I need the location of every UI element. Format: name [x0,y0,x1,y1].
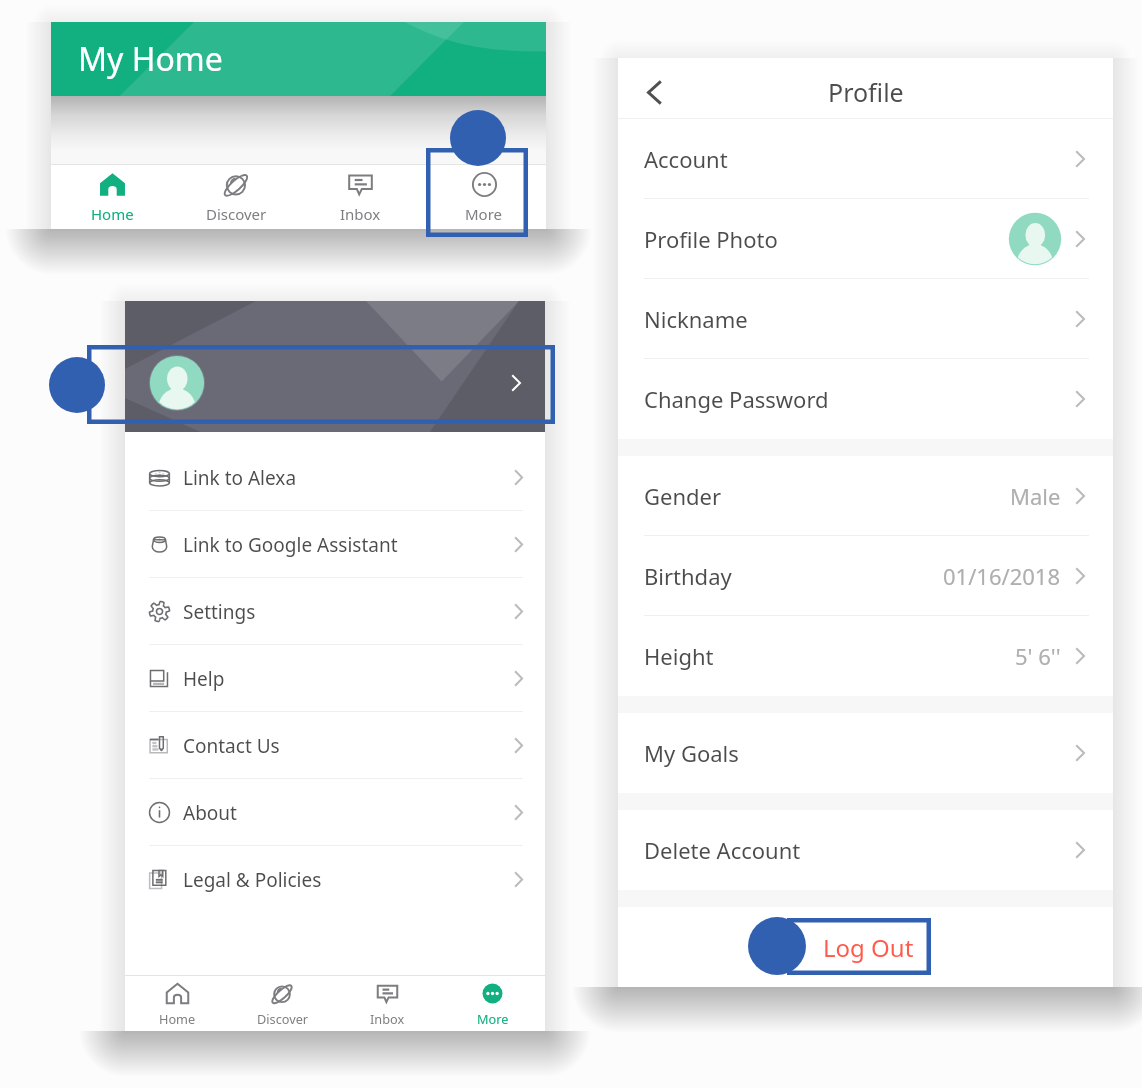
staticText: More [465,204,503,224]
staticText: Inbox [340,204,381,224]
staticText: Profile [828,75,904,109]
button[interactable]: Link to Alexa [125,444,545,511]
staticText: Height [644,641,714,671]
staticText: Help [183,666,225,692]
button[interactable]: Height [618,616,1113,696]
staticText: Settings [183,599,256,625]
button[interactable]: Home [51,165,174,229]
button[interactable]: Link to Google Assistant [125,511,545,578]
button[interactable]: My Goals [618,713,1113,793]
staticText: Home [159,1010,196,1027]
button[interactable]: Nickname [618,279,1113,359]
button[interactable]: Account [618,119,1113,199]
button[interactable]: Birthday [618,536,1113,616]
staticText: Delete Account [644,835,801,865]
staticText: My Home [78,37,223,81]
staticText: Legal & Policies [183,867,322,893]
button[interactable]: Discover [174,165,298,229]
staticText: Gender [644,481,722,511]
staticText: My Goals [644,738,739,768]
staticText: About [183,800,237,826]
button[interactable]: Change Password [618,359,1113,439]
staticText: Profile Photo [644,224,778,254]
button[interactable]: Inbox [335,976,440,1031]
button[interactable]: Gender [618,456,1113,536]
staticText: 01/16/2018 [943,561,1061,591]
button[interactable]: Log Out [783,917,954,978]
staticText: Log Out [823,931,914,964]
button[interactable]: More [440,976,545,1031]
button[interactable]: Legal & Policies [125,846,545,913]
staticText: More [477,1010,509,1027]
staticText: Male [1010,481,1061,511]
staticText: Birthday [644,561,732,591]
staticText: Link to Google Assistant [183,532,398,558]
staticText: Contact Us [183,733,280,759]
button[interactable]: Profile Photo [618,199,1113,279]
staticText: Link to Alexa [183,465,297,491]
button[interactable]: Inbox [298,165,422,229]
button[interactable]: Home [125,976,230,1031]
staticText: Nickname [644,304,748,334]
button[interactable]: Back [631,69,677,115]
button[interactable]: Help [125,645,545,712]
button[interactable]: Delete Account [618,810,1113,890]
staticText: Discover [257,1010,309,1027]
staticText: Inbox [370,1010,405,1027]
button[interactable]: Contact Us [125,712,545,779]
button[interactable]: Open profile [125,345,545,421]
staticText: Account [644,144,728,174]
staticText: 5' 6'' [1015,641,1061,671]
staticText: Discover [206,204,267,224]
staticText: Home [91,204,134,224]
button[interactable]: Settings [125,578,545,645]
staticText: Change Password [644,384,829,414]
button[interactable]: Discover [230,976,335,1031]
button[interactable]: About [125,779,545,846]
button[interactable]: More [422,165,546,229]
